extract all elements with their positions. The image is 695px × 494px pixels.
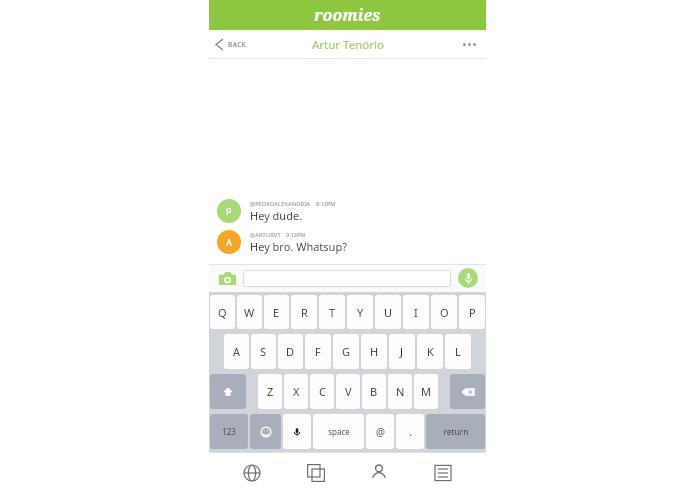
button[interactable]: C	[310, 374, 334, 409]
button[interactable]: S	[251, 334, 276, 369]
staticText: T	[329, 305, 336, 320]
button[interactable]: I	[403, 295, 429, 329]
staticText: Y	[357, 305, 364, 320]
button[interactable]: P	[459, 295, 485, 329]
staticText: Hey dude.	[250, 208, 303, 223]
button[interactable]: Voice message	[458, 268, 478, 288]
button[interactable]: D	[278, 334, 303, 369]
staticText: D	[286, 344, 295, 359]
button[interactable]: Dictation	[283, 414, 311, 449]
button[interactable]: space	[313, 414, 364, 449]
staticText: K	[427, 344, 434, 359]
button[interactable]: More options	[453, 35, 486, 54]
staticText: A	[233, 344, 241, 359]
button[interactable]: .	[396, 414, 424, 449]
staticText: C	[319, 384, 326, 399]
staticText: Q	[218, 305, 227, 320]
button[interactable]	[243, 270, 451, 287]
staticText: R	[301, 305, 308, 320]
button[interactable]: BACK	[209, 33, 254, 56]
button[interactable]: @	[366, 414, 394, 449]
button[interactable]: K	[417, 334, 443, 369]
button[interactable]: return	[426, 414, 485, 449]
staticText: B	[370, 384, 378, 399]
staticText: W	[244, 305, 255, 320]
button[interactable]: H	[361, 334, 387, 369]
button[interactable]: X	[284, 374, 308, 409]
button[interactable]: Shift	[210, 374, 246, 409]
staticText: O	[440, 305, 449, 320]
staticText: F	[315, 344, 321, 359]
staticText: @PEDROALEXANDRIA	[250, 200, 311, 207]
button[interactable]: P	[209, 199, 486, 223]
staticText: S	[260, 344, 267, 359]
button[interactable]: Explore	[231, 452, 273, 494]
button[interactable]: T	[319, 295, 345, 329]
staticText: U	[384, 305, 393, 320]
button[interactable]: W	[237, 295, 262, 329]
staticText: .	[409, 425, 412, 439]
staticText: V	[345, 384, 352, 399]
staticText: Artur Tenório	[312, 37, 384, 53]
button[interactable]: G	[333, 334, 359, 369]
staticText: A	[226, 236, 232, 248]
button[interactable]: L	[445, 334, 471, 369]
staticText: E	[273, 305, 280, 320]
button[interactable]: E	[264, 295, 289, 329]
staticText: P	[226, 205, 232, 217]
staticText: 9:12PM	[316, 200, 336, 207]
staticText: G	[342, 344, 351, 359]
button[interactable]: Menu	[422, 452, 464, 494]
button[interactable]: N	[388, 374, 412, 409]
button[interactable]: B	[362, 374, 386, 409]
staticText: 123	[222, 426, 236, 437]
staticText: L	[455, 344, 461, 359]
button[interactable]: Groups	[295, 452, 337, 494]
staticText: Z	[267, 384, 274, 399]
staticText: H	[370, 344, 379, 359]
staticText: BACK	[228, 40, 247, 49]
button[interactable]: Y	[347, 295, 373, 329]
staticText: X	[293, 384, 300, 399]
staticText: I	[414, 305, 418, 320]
staticText: @ARTURVT	[250, 231, 281, 238]
button[interactable]: Profile	[358, 452, 400, 494]
staticText: J	[400, 344, 404, 359]
staticText: P	[469, 305, 476, 320]
staticText: roomies	[314, 4, 381, 26]
button[interactable]: 123	[210, 414, 248, 449]
button[interactable]: Emoji	[250, 414, 281, 449]
button[interactable]: O	[431, 295, 457, 329]
button[interactable]: Q	[210, 295, 235, 329]
button[interactable]: M	[414, 374, 438, 409]
button[interactable]: A	[224, 334, 249, 369]
staticText: N	[396, 384, 405, 399]
button[interactable]: R	[291, 295, 317, 329]
button[interactable]: Backspace	[450, 374, 485, 409]
button[interactable]: U	[375, 295, 401, 329]
staticText: return	[443, 426, 469, 438]
button[interactable]: V	[336, 374, 360, 409]
staticText: 9:12PM	[286, 231, 306, 238]
button[interactable]: J	[389, 334, 415, 369]
button[interactable]: F	[305, 334, 331, 369]
staticText: @	[376, 425, 385, 439]
staticText: Hey bro. Whatsup?	[250, 239, 347, 254]
button[interactable]: Z	[258, 374, 282, 409]
staticText: space	[328, 426, 350, 437]
button[interactable]: Camera	[217, 268, 237, 288]
button[interactable]: A	[209, 230, 486, 254]
staticText: M	[421, 384, 431, 399]
